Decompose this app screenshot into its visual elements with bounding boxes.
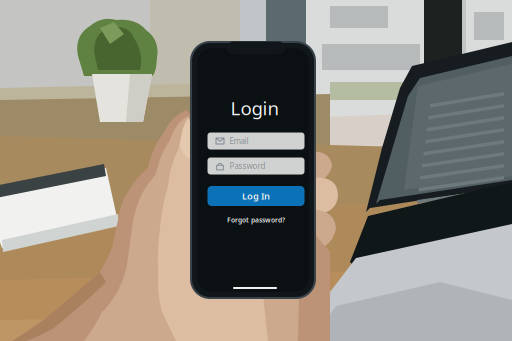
staticText: Email <box>229 136 248 146</box>
staticText: Login <box>230 96 279 120</box>
button[interactable]: Log In <box>207 186 304 206</box>
staticText: Password <box>229 161 265 171</box>
button[interactable]: Password <box>207 157 304 174</box>
button[interactable]: Email <box>207 132 304 149</box>
staticText: Log In <box>242 190 270 202</box>
staticText: Forgot password? <box>227 216 285 224</box>
button[interactable]: Forgot password? <box>207 215 304 224</box>
